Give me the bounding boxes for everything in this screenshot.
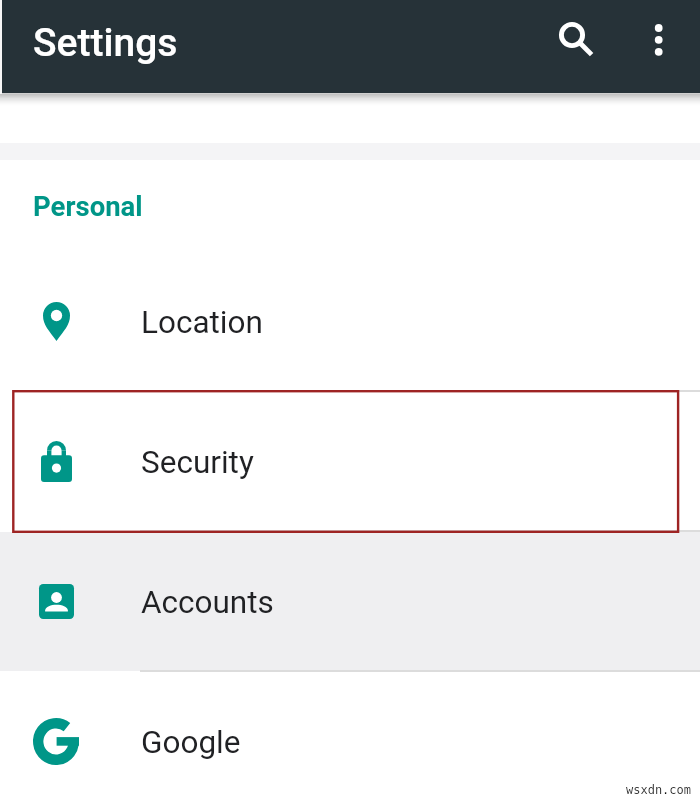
button[interactable]: Google (0, 671, 700, 799)
staticText: Location (141, 304, 263, 341)
staticText: Personal (33, 190, 143, 222)
staticText: Settings (33, 20, 178, 66)
staticText: Accounts (141, 584, 274, 621)
button[interactable]: Security (0, 391, 700, 531)
button[interactable]: Search (548, 11, 596, 59)
button[interactable]: Location (0, 251, 700, 391)
staticText: wsxdn.com (626, 783, 692, 797)
button[interactable]: More options (635, 16, 683, 64)
button[interactable]: Accounts (0, 531, 700, 671)
staticText: Security (141, 444, 254, 481)
staticText: Google (141, 724, 241, 761)
